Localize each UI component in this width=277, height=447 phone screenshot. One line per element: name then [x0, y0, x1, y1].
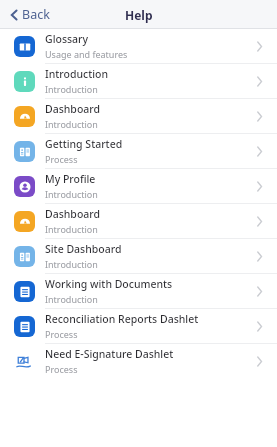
staticText: Reconciliation Reports Dashlet — [45, 312, 199, 326]
other: Open My Profile — [249, 176, 269, 196]
button[interactable]: Introduction — [0, 64, 277, 98]
staticText: Dashboard — [45, 102, 101, 116]
button[interactable]: Need E-Signature Dashlet — [0, 344, 277, 378]
staticText: Introduction — [45, 83, 98, 95]
other: Open Introduction — [249, 71, 269, 91]
staticText: Help — [125, 7, 153, 23]
staticText: Back — [22, 6, 50, 23]
other: Open Working with Documents — [249, 281, 269, 301]
other: Open Dashboard — [249, 211, 269, 231]
staticText: Usage and features — [45, 48, 128, 60]
staticText: Introduction — [45, 293, 98, 305]
button[interactable]: Getting Started — [0, 134, 277, 168]
staticText: Getting Started — [45, 137, 123, 151]
other: Open Site Dashboard — [249, 246, 269, 266]
other: Open Glossary — [249, 36, 269, 56]
button[interactable]: Back — [6, 3, 54, 26]
staticText: Working with Documents — [45, 277, 173, 291]
button[interactable]: Dashboard — [0, 204, 277, 238]
other: Open Getting Started — [249, 141, 269, 161]
staticText: Process — [45, 328, 78, 340]
staticText: Need E-Signature Dashlet — [45, 347, 174, 361]
staticText: Dashboard — [45, 207, 101, 221]
other: Open Reconciliation Reports Dashlet — [249, 316, 269, 336]
staticText: Site Dashboard — [45, 242, 122, 256]
staticText: My Profile — [45, 172, 96, 186]
staticText: Introduction — [45, 258, 98, 270]
staticText: Process — [45, 363, 78, 375]
other: Open Need E-Signature Dashlet — [249, 351, 269, 371]
button[interactable]: Site Dashboard — [0, 239, 277, 273]
staticText: Glossary — [45, 32, 89, 46]
staticText: Process — [45, 153, 78, 165]
other: Open Dashboard — [249, 106, 269, 126]
button[interactable]: Working with Documents — [0, 274, 277, 308]
staticText: Introduction — [45, 67, 109, 81]
staticText: Introduction — [45, 188, 98, 200]
staticText: Introduction — [45, 223, 98, 235]
button[interactable]: Dashboard — [0, 99, 277, 133]
button[interactable]: Glossary — [0, 29, 277, 63]
button[interactable]: My Profile — [0, 169, 277, 203]
button[interactable]: Reconciliation Reports Dashlet — [0, 309, 277, 343]
staticText: Introduction — [45, 118, 98, 130]
